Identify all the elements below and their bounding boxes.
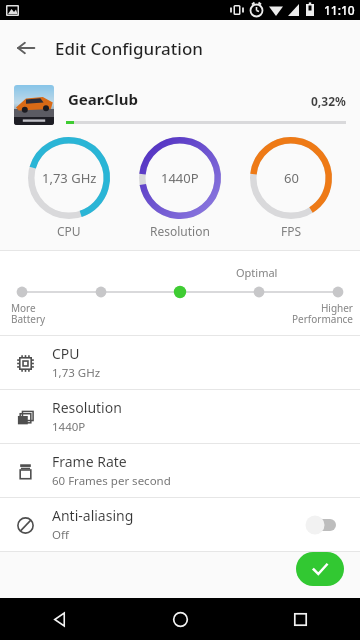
button[interactable]: Back — [0, 598, 120, 640]
staticText: Resolution — [150, 223, 210, 239]
button[interactable]: Anti-aliasing toggle, off — [304, 513, 344, 537]
staticText: Resolution — [52, 398, 122, 417]
staticText: 1,73 GHz — [52, 365, 101, 381]
staticText: CPU — [57, 223, 81, 239]
button[interactable]: Home — [120, 598, 240, 640]
staticText: 60 Frames per second — [52, 473, 171, 489]
staticText: Edit Configuration — [55, 37, 203, 60]
staticText: 60 — [284, 169, 299, 187]
button[interactable]: CPU — [0, 336, 360, 389]
staticText: 1,73 GHz — [42, 169, 97, 187]
button[interactable]: Resolution — [0, 390, 360, 443]
button[interactable]: Recent apps — [240, 598, 360, 640]
button[interactable]: Anti-aliasing — [0, 498, 360, 551]
staticText: More Battery — [11, 301, 46, 326]
staticText: Optimal — [236, 265, 278, 280]
staticText: CPU — [52, 344, 80, 363]
button[interactable]: Apply configuration — [296, 552, 344, 586]
button[interactable]: Frame Rate — [0, 444, 360, 497]
staticText: 0,32% — [311, 93, 346, 109]
staticText: Off — [52, 527, 69, 543]
staticText: Anti-aliasing — [52, 506, 134, 525]
staticText: 11:10 — [324, 2, 355, 18]
button[interactable]: 1,73 GHz — [27, 136, 111, 220]
staticText: Gear.Club — [68, 89, 138, 109]
button[interactable]: Back — [6, 28, 46, 68]
button[interactable] — [22, 285, 338, 299]
staticText: 1440P — [52, 419, 86, 435]
button[interactable]: 60 — [249, 136, 333, 220]
staticText: Higher Performance — [291, 301, 353, 326]
staticText: Frame Rate — [52, 452, 127, 471]
button[interactable]: 1440P — [138, 136, 222, 220]
staticText: FPS — [281, 223, 302, 239]
staticText: 1440P — [161, 169, 199, 187]
